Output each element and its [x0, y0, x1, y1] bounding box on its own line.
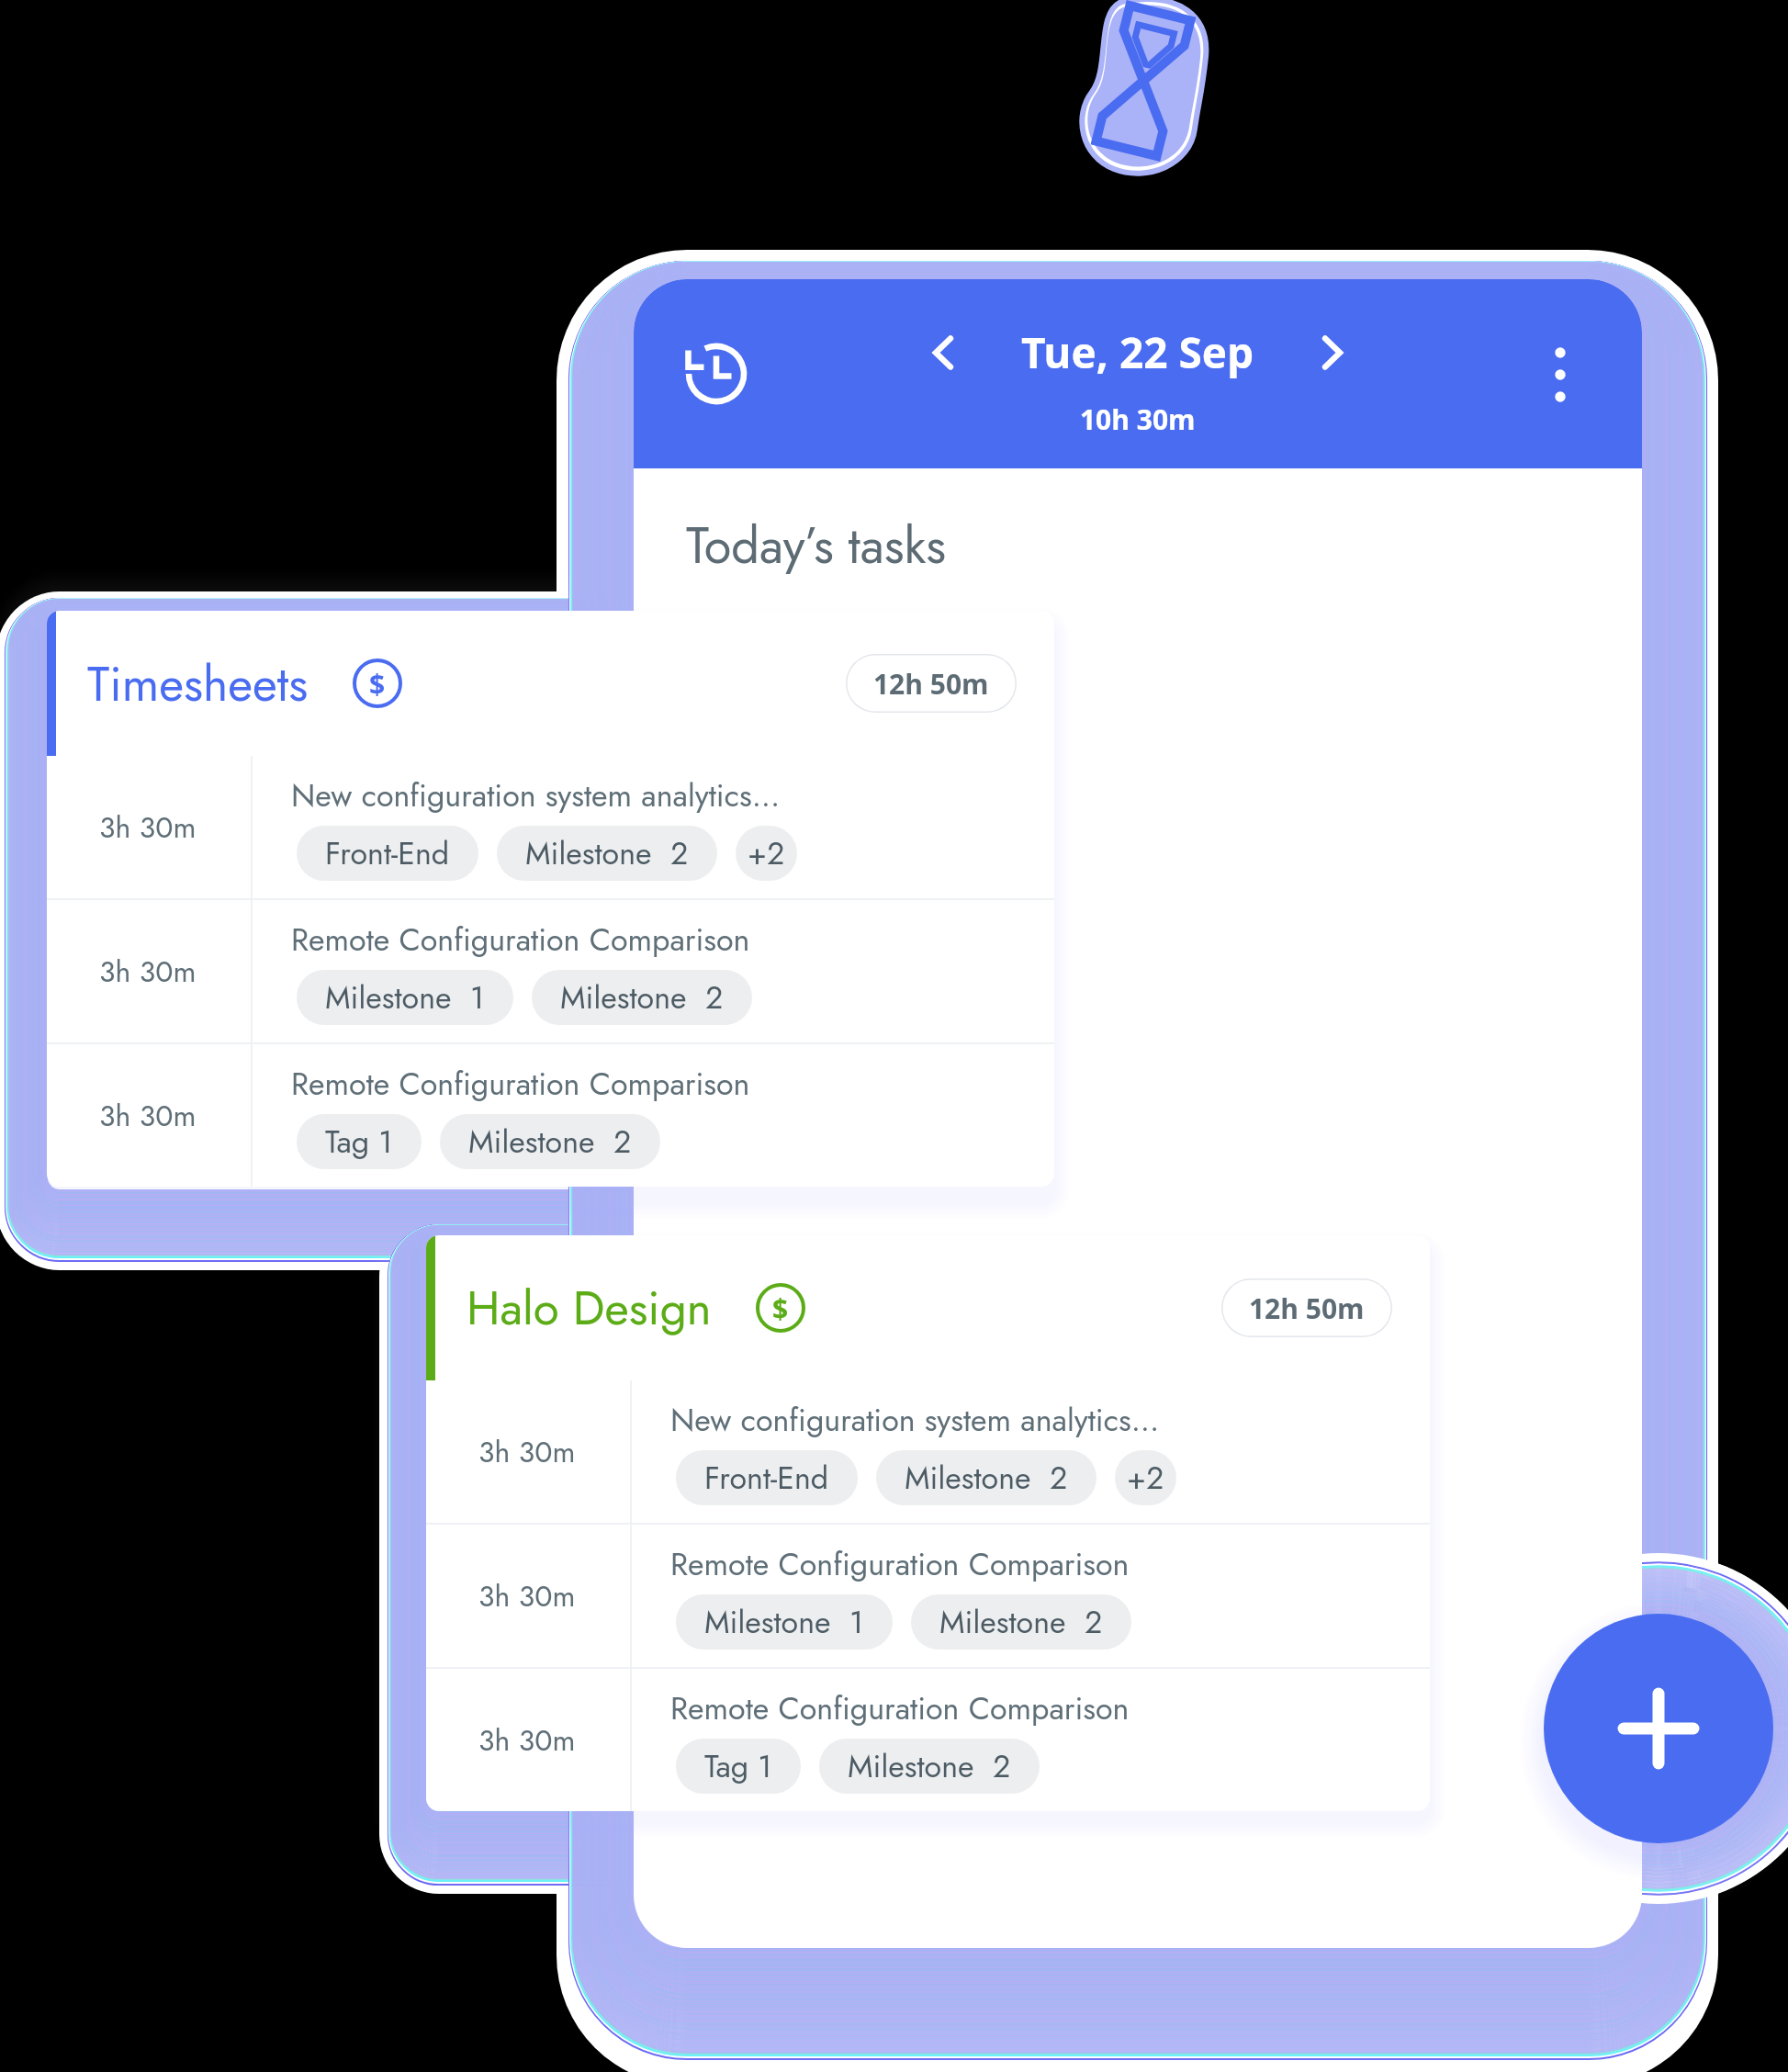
button[interactable]: Next day [1291, 311, 1374, 394]
staticText: 3h 30m [99, 806, 197, 849]
staticText: 3h 30m [99, 951, 197, 993]
button[interactable]: Milestone 1 [297, 970, 513, 1025]
staticText: Tue, 22 Sep [1021, 323, 1254, 381]
button[interactable]: Tag 1 [676, 1739, 801, 1794]
button[interactable]: 3h 30m [47, 756, 1054, 898]
staticText: Remote Configuration Comparison [670, 1686, 1130, 1731]
staticText: Today’s tasks [686, 510, 947, 581]
button[interactable]: Milestone 2 [911, 1594, 1131, 1650]
staticText: Milestone 2 [939, 1600, 1103, 1645]
button[interactable]: Milestone 2 [440, 1114, 660, 1169]
button[interactable]: 3h 30m [47, 900, 1054, 1042]
button[interactable]: Milestone 1 [676, 1594, 893, 1650]
button[interactable]: 3h 30m [426, 1669, 1430, 1811]
button[interactable]: Tag 1 [297, 1114, 422, 1169]
staticText: Remote Configuration Comparison [291, 918, 750, 963]
staticText: 3h 30m [478, 1431, 576, 1473]
staticText: 3h 30m [478, 1575, 576, 1617]
button[interactable]: More options [1533, 347, 1588, 402]
button[interactable]: 3h 30m [426, 1525, 1430, 1667]
staticText: Milestone 2 [468, 1120, 632, 1165]
staticText: +2 [1127, 1456, 1164, 1501]
button[interactable]: 12h 50m [846, 654, 1017, 713]
button[interactable]: Milestone 2 [497, 826, 717, 881]
staticText: Milestone 2 [560, 975, 724, 1020]
staticText: Halo Design [467, 1274, 712, 1342]
button[interactable]: 3h 30m [47, 1044, 1054, 1187]
staticText: Remote Configuration Comparison [291, 1062, 750, 1107]
staticText: 12h 50m [873, 665, 989, 703]
staticText: Milestone 1 [325, 975, 485, 1020]
staticText: New configuration system analytics... [291, 773, 781, 818]
staticText: Tag 1 [325, 1120, 393, 1165]
button[interactable]: Front-End [297, 826, 478, 881]
staticText: Milestone 1 [704, 1600, 864, 1645]
staticText: 3h 30m [99, 1095, 197, 1137]
button[interactable]: Milestone 2 [876, 1450, 1096, 1505]
staticText: +2 [748, 831, 785, 876]
staticText: Milestone 2 [848, 1744, 1011, 1789]
staticText: $ [772, 1289, 789, 1327]
button[interactable]: Milestone 2 [532, 970, 752, 1025]
staticText: Front-End [704, 1456, 829, 1501]
staticText: New configuration system analytics... [670, 1398, 1160, 1443]
staticText: Tag 1 [704, 1744, 772, 1789]
staticText: $ [369, 665, 386, 703]
button[interactable]: Add [1544, 1614, 1773, 1843]
staticText: Front-End [325, 831, 450, 876]
button[interactable]: +2 [1115, 1450, 1176, 1505]
button[interactable]: History [675, 332, 758, 415]
button[interactable]: 3h 30m [426, 1380, 1430, 1523]
staticText: Milestone 2 [905, 1456, 1068, 1501]
staticText: 3h 30m [478, 1719, 576, 1762]
button[interactable]: Milestone 2 [819, 1739, 1040, 1794]
staticText: Timesheets [87, 649, 309, 718]
staticText: 10h 30m [1080, 400, 1196, 438]
button[interactable]: +2 [736, 826, 797, 881]
button[interactable]: 12h 50m [1221, 1278, 1392, 1337]
staticText: Milestone 2 [525, 831, 689, 876]
staticText: Remote Configuration Comparison [670, 1542, 1130, 1587]
staticText: 12h 50m [1249, 1289, 1365, 1327]
button[interactable]: Front-End [676, 1450, 858, 1505]
button[interactable]: Previous day [902, 311, 984, 394]
